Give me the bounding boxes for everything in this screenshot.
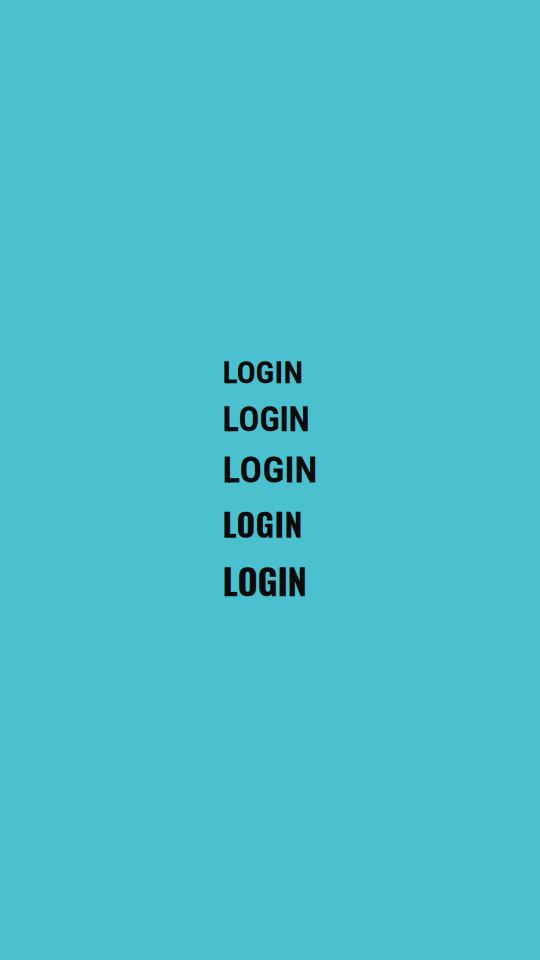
staticText: LOGIN — [222, 448, 317, 491]
staticText: LOGIN — [222, 354, 303, 391]
staticText: LOGIN — [222, 499, 302, 547]
staticText: LOGIN — [222, 555, 306, 606]
staticText: LOGIN — [222, 399, 309, 440]
